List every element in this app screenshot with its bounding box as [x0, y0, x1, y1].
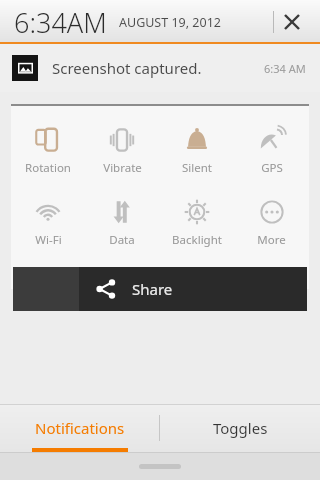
staticText: Wi-Fi [35, 232, 62, 248]
staticText: Silent [182, 160, 212, 176]
button[interactable]: Silent [159, 124, 234, 178]
staticText: Vibrate [103, 160, 142, 176]
staticText: 6:34AM [14, 4, 107, 41]
staticText: Toggles [213, 418, 268, 438]
staticText: More [257, 232, 286, 248]
staticText: AUGUST 19, 2012 [119, 14, 221, 31]
staticText: GPS [261, 160, 283, 176]
staticText: Screenshot captured. [52, 58, 202, 78]
staticText: Notifications [35, 418, 125, 438]
button[interactable]: Share [13, 267, 307, 311]
button[interactable]: GPS [234, 124, 309, 178]
button[interactable]: Vibrate [85, 124, 159, 178]
staticText: Rotation [25, 160, 71, 176]
button[interactable]: Toggles [160, 404, 320, 452]
button[interactable]: Rotation [11, 124, 85, 178]
button[interactable]: Screenshot captured. [0, 44, 320, 92]
button[interactable]: More [234, 196, 309, 250]
button[interactable]: Notifications [0, 404, 159, 452]
button[interactable]: Backlight [159, 196, 234, 250]
button[interactable]: Close [274, 4, 310, 40]
staticText: 6:34 AM [264, 61, 306, 76]
button[interactable]: Wi-Fi [11, 196, 85, 250]
staticText: Backlight [172, 232, 222, 248]
staticText: Share [132, 279, 173, 299]
button[interactable]: Data [85, 196, 159, 250]
staticText: Data [109, 232, 135, 248]
